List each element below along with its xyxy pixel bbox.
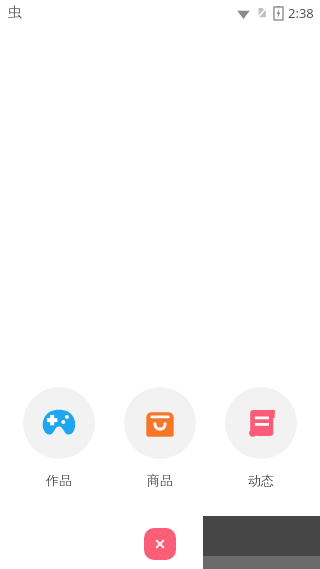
staticText: 商品: [147, 472, 173, 488]
staticText: 2:38: [288, 4, 314, 22]
staticText: 作品: [46, 472, 72, 488]
staticText: 动态: [248, 472, 274, 488]
button[interactable]: 关闭: [144, 528, 176, 560]
button[interactable]: 商品: [118, 387, 202, 488]
staticText: 虫: [8, 4, 22, 22]
button[interactable]: 作品: [17, 387, 101, 488]
button[interactable]: 动态: [219, 387, 303, 488]
